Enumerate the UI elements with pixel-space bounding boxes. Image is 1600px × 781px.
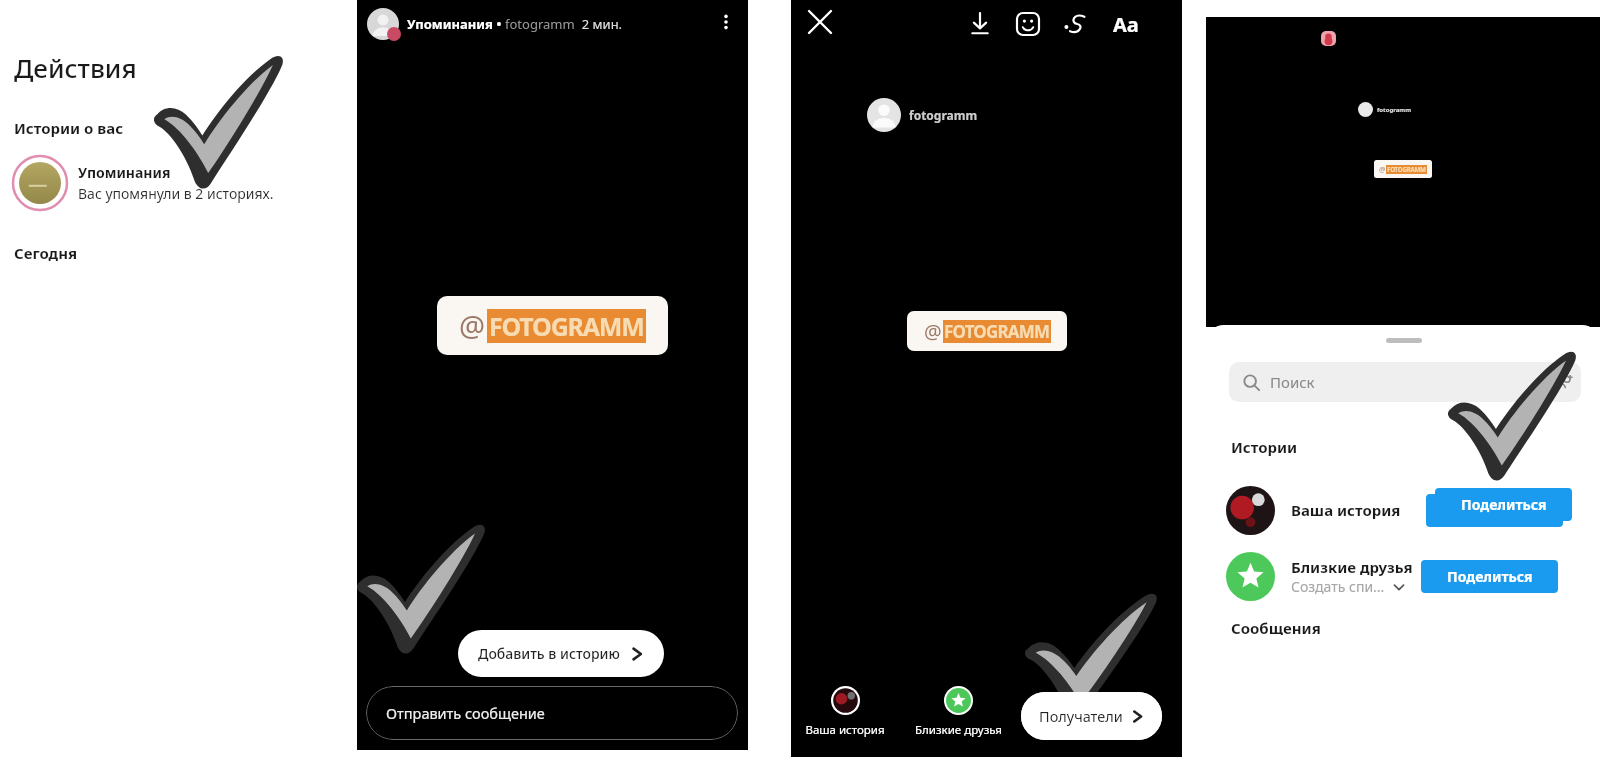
staticText: @ [1379,164,1386,174]
staticText: Упоминания [407,15,493,33]
button[interactable]: Text [1107,5,1145,43]
staticText: Поиск [1270,372,1315,392]
staticText: • [493,15,505,33]
button[interactable]: Ваша история [1206,480,1600,540]
staticText: Ваша история [1291,500,1401,520]
button[interactable]: Получатели [1021,692,1162,740]
staticText: fotogramm [1377,106,1412,114]
staticText: 2 мин. [575,15,623,33]
staticText: fotogramm [505,15,575,33]
button[interactable]: Отправить сообщение [366,686,738,740]
button[interactable]: Упоминания [12,155,342,211]
staticText: Истории [1231,437,1298,457]
staticText: @ [459,306,486,345]
button[interactable]: Близкие друзья [908,686,1009,738]
staticText: Aa [1113,11,1139,38]
button[interactable]: Draw [1059,7,1093,41]
staticText: fotogramm [909,107,978,123]
button[interactable]: Sticker [1011,7,1045,41]
staticText: Упоминания [78,163,171,182]
button[interactable]: Add people [1551,372,1575,396]
staticText: Действия [14,50,137,85]
staticText: Ваша история [805,722,885,738]
staticText: FOTOGRAMM [489,309,644,343]
staticText: FOTOGRAMM [944,320,1050,343]
staticText: Близкие друзья [915,722,1002,738]
staticText: Сообщения [1231,618,1321,635]
button[interactable]: Поделиться [1426,494,1563,527]
button[interactable]: Близкие друзья [1206,545,1600,607]
staticText: Сегодня [14,243,78,263]
button[interactable]: Поделиться [1421,560,1558,593]
button[interactable]: Поделиться [1435,488,1572,521]
button[interactable]: Close [803,5,837,39]
staticText: @ [924,318,942,345]
staticText: FOTOGRAMM [1387,165,1426,174]
staticText: Близкие друзья [1291,557,1413,577]
staticText: Добавить в историю [478,644,620,663]
staticText: Создать спи... [1291,577,1385,596]
button[interactable]: More options [712,8,740,36]
button[interactable]: Ваша история [799,686,891,738]
staticText: Поделиться [1452,501,1538,520]
button[interactable]: Добавить в историю [458,630,664,677]
staticText: Поделиться [1447,567,1533,586]
staticText: Поделиться [1461,495,1547,514]
button[interactable]: Получатели [1021,692,1162,740]
staticText: Истории о вас [14,118,124,138]
staticText: Отправить сообщение [386,703,545,723]
staticText: Получатели [1039,706,1123,726]
staticText: Вас упомянули в 2 историях. [78,184,274,203]
button[interactable]: Поиск [1229,362,1581,402]
staticText: Получатели [1039,706,1123,726]
button[interactable]: Save [963,7,997,41]
